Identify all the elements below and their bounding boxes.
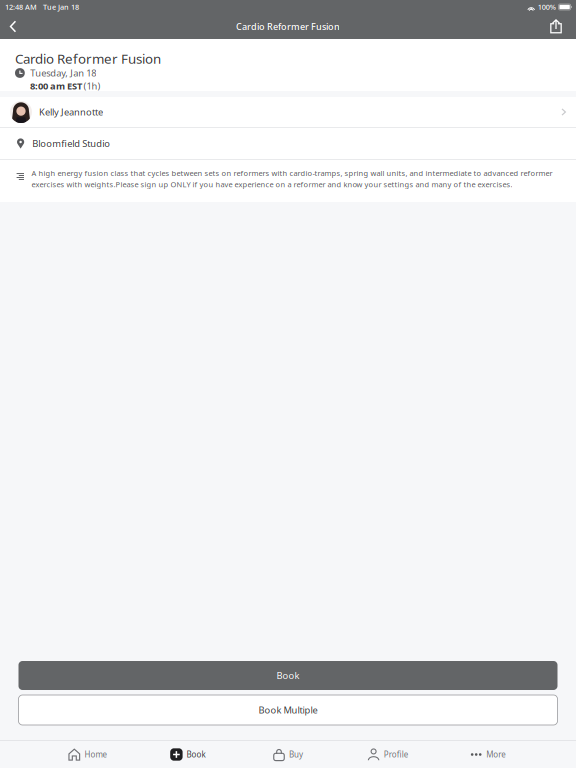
staticText: Kelly Jeannotte	[39, 106, 103, 118]
staticText: 12:48 AM	[5, 2, 37, 12]
button[interactable]: Kelly Jeannotte	[0, 97, 576, 127]
button[interactable]: Book	[18, 661, 557, 690]
button[interactable]: Book Multiple	[18, 695, 557, 725]
button[interactable]: Share	[543, 14, 569, 38]
staticText: Book Multiple	[258, 704, 317, 716]
staticText: Buy	[289, 749, 303, 760]
button[interactable]: Buy	[238, 741, 338, 768]
staticText: Home	[84, 749, 107, 760]
button[interactable]: Profile	[338, 741, 438, 768]
staticText: More	[486, 749, 506, 760]
staticText: Book	[276, 669, 299, 682]
staticText: Bloomfield Studio	[32, 137, 110, 150]
button[interactable]: More	[438, 741, 538, 768]
button[interactable]: Book	[138, 741, 238, 768]
button[interactable]: Home	[38, 741, 138, 768]
staticText: (1h)	[83, 80, 100, 92]
staticText: Tue Jan 18	[43, 2, 79, 12]
staticText: A high energy fusion class that cycles b…	[31, 168, 552, 189]
button[interactable]: Back	[1, 14, 25, 38]
staticText: Tuesday, Jan 18	[30, 67, 96, 79]
staticText: Book	[187, 749, 206, 760]
staticText: 8:00 am EST	[30, 80, 82, 92]
staticText: 100%	[538, 2, 556, 12]
staticText: Cardio Reformer Fusion	[15, 49, 161, 68]
staticText: Profile	[384, 749, 409, 760]
staticText: Cardio Reformer Fusion	[236, 20, 340, 33]
